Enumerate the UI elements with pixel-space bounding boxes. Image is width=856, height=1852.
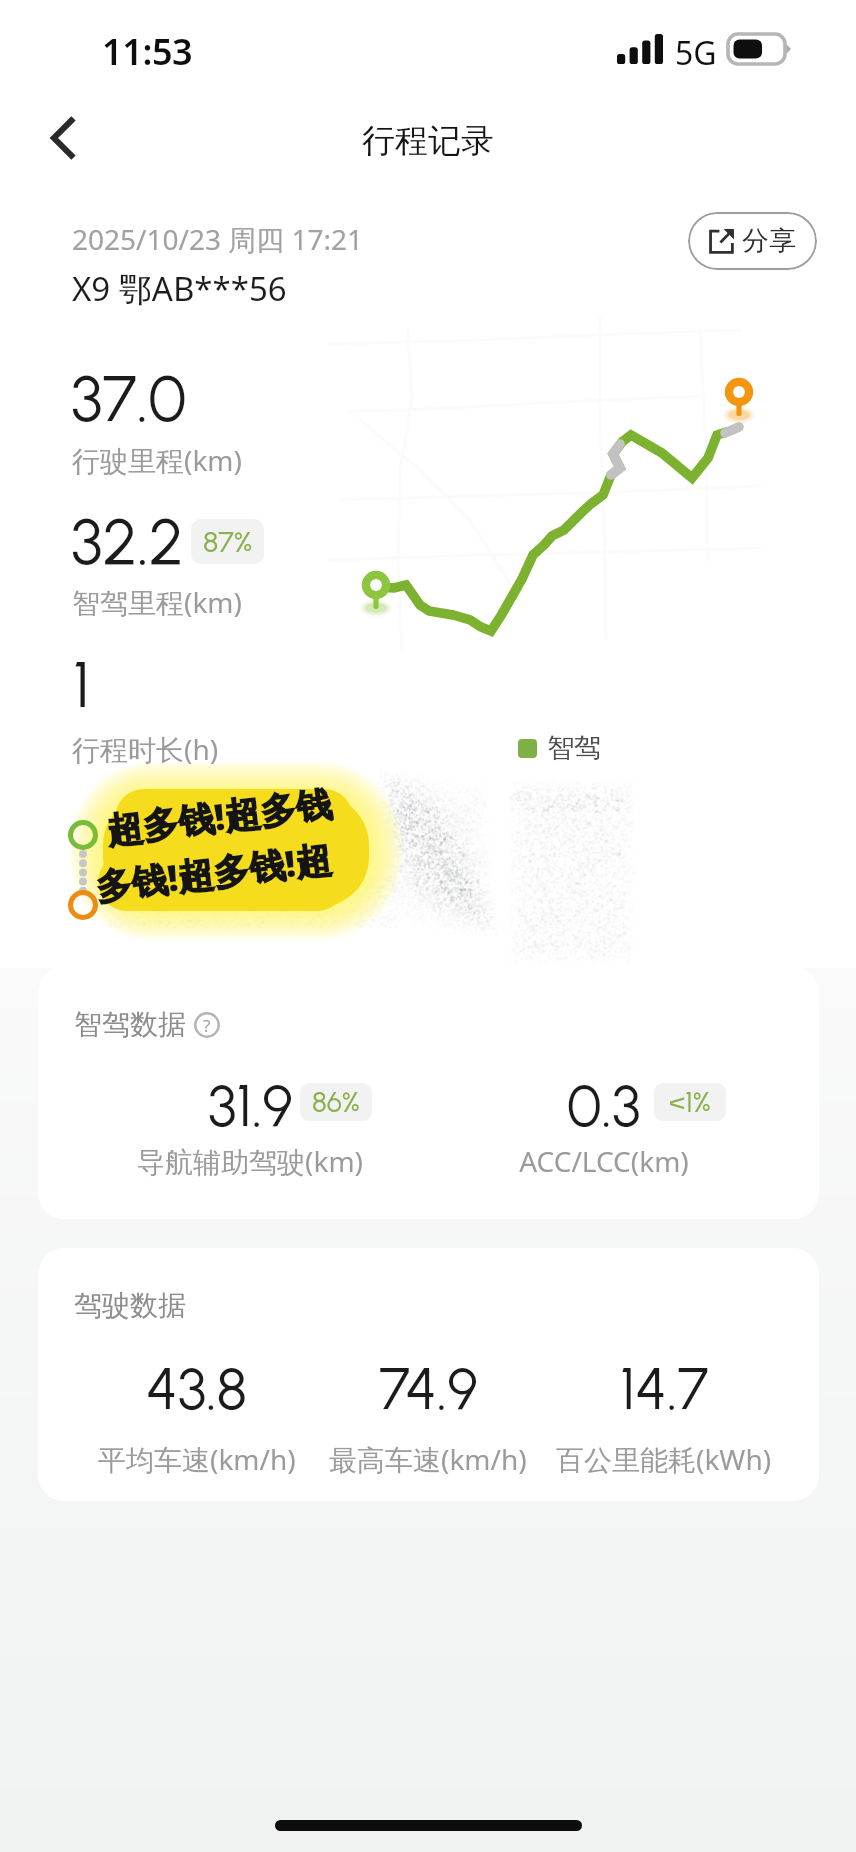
staticText: ACC/LCC(km) bbox=[519, 1142, 689, 1180]
button[interactable]: 驾驶数据 bbox=[38, 1248, 819, 1501]
staticText: 行驶里程(km) bbox=[72, 441, 242, 479]
staticText: ? bbox=[203, 1014, 211, 1037]
staticText: 多钱!超多钱!超 bbox=[93, 834, 334, 911]
button[interactable]: 分享 bbox=[688, 212, 817, 270]
staticText: 最高车速(km/h) bbox=[329, 1440, 527, 1478]
staticText: 智驾数据 bbox=[74, 1007, 186, 1042]
staticText: 行程记录 bbox=[0, 120, 856, 162]
staticText: 1 bbox=[73, 646, 90, 723]
staticText: 5G bbox=[675, 31, 717, 75]
staticText: X9 鄂AB***56 bbox=[72, 266, 287, 311]
staticText: 分享 bbox=[742, 224, 796, 258]
staticText: <1% bbox=[669, 1085, 711, 1119]
staticText: 14.7 bbox=[620, 1354, 709, 1424]
staticText: 43.8 bbox=[146, 1354, 248, 1424]
button[interactable]: 智驾数据 bbox=[38, 967, 819, 1219]
staticText: 智驾里程(km) bbox=[72, 583, 242, 621]
staticText: 百公里能耗(kWh) bbox=[556, 1440, 772, 1478]
staticText: 86% bbox=[312, 1085, 360, 1119]
staticText: 平均车速(km/h) bbox=[98, 1440, 296, 1478]
staticText: 0.3 bbox=[567, 1071, 641, 1141]
staticText: 74.9 bbox=[379, 1354, 478, 1424]
staticText: 37.0 bbox=[71, 360, 187, 437]
staticText: 87% bbox=[203, 524, 253, 559]
staticText: 行程时长(h) bbox=[72, 730, 219, 768]
staticText: 2025/10/23 周四 17:21 bbox=[72, 220, 364, 258]
button[interactable]: Info bbox=[194, 1012, 220, 1038]
staticText: 驾驶数据 bbox=[74, 1288, 186, 1323]
staticText: 31.9 bbox=[208, 1071, 293, 1141]
staticText: 超多钱!超多钱 bbox=[104, 778, 335, 855]
staticText: 11:53 bbox=[102, 27, 193, 76]
staticText: 智驾 bbox=[547, 731, 601, 765]
staticText: 32.2 bbox=[71, 503, 184, 580]
button[interactable]: Back bbox=[26, 100, 102, 176]
staticText: 导航辅助驾驶(km) bbox=[137, 1142, 363, 1180]
